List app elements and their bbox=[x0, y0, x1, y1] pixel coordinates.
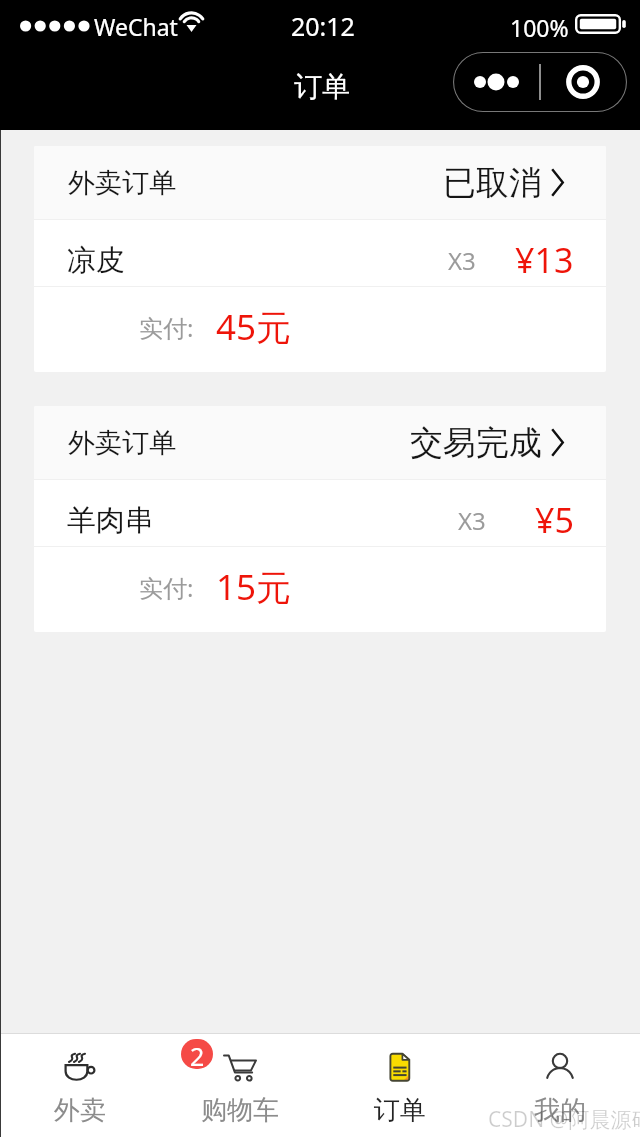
staticText: 外卖订单 bbox=[68, 166, 176, 200]
staticText: 我的 bbox=[534, 1094, 586, 1127]
button[interactable]: 我的 bbox=[480, 1034, 640, 1137]
staticText: 羊肉串 bbox=[67, 502, 154, 539]
staticText: 凉皮 bbox=[67, 242, 125, 279]
staticText: 20:12 bbox=[291, 9, 355, 43]
staticText: 100% bbox=[510, 12, 569, 43]
button[interactable]: 外卖 bbox=[0, 1034, 160, 1137]
button[interactable]: 外卖订单 bbox=[34, 146, 606, 219]
button[interactable]: More options bbox=[453, 52, 627, 112]
staticText: CSDN @阿晨源码 bbox=[488, 1105, 640, 1134]
staticText: X3 bbox=[458, 504, 486, 537]
staticText: 15元 bbox=[216, 563, 292, 611]
button[interactable]: 2 bbox=[160, 1034, 320, 1137]
staticText: 已取消 bbox=[443, 162, 542, 204]
staticText: 实付: bbox=[139, 571, 194, 604]
staticText: 订单 bbox=[374, 1094, 426, 1127]
staticText: 45元 bbox=[216, 303, 292, 351]
staticText: WeChat bbox=[94, 11, 178, 42]
staticText: 订单 bbox=[294, 69, 350, 104]
staticText: ¥5 bbox=[535, 497, 574, 543]
staticText: 外卖 bbox=[54, 1094, 106, 1127]
staticText: 实付: bbox=[139, 311, 194, 344]
staticText: 购物车 bbox=[201, 1094, 279, 1127]
button[interactable]: 订单 bbox=[320, 1034, 480, 1137]
button[interactable]: 外卖订单 bbox=[34, 406, 606, 479]
staticText: 2 bbox=[190, 1039, 205, 1069]
staticText: X3 bbox=[448, 244, 476, 277]
staticText: 交易完成 bbox=[410, 422, 542, 464]
staticText: 外卖订单 bbox=[68, 426, 176, 460]
staticText: ¥13 bbox=[515, 237, 574, 283]
